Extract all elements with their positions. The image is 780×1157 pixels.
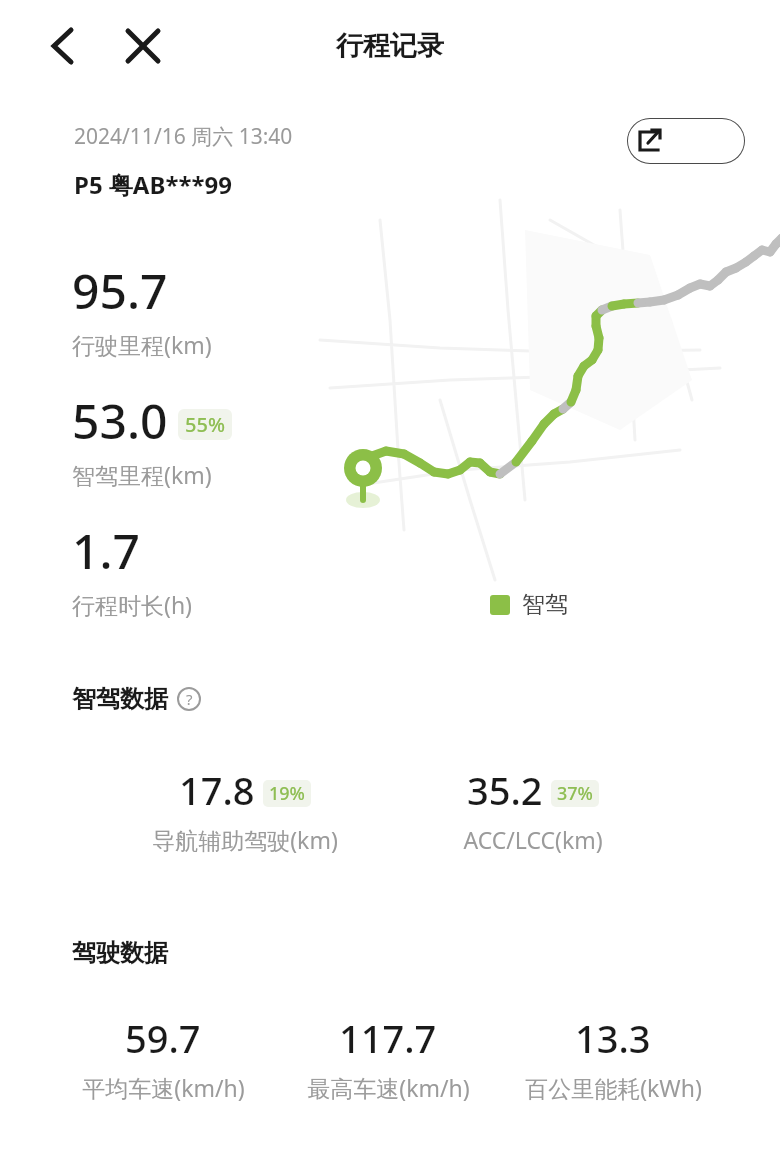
button[interactable]: 117.7 xyxy=(238,1012,538,1103)
staticText: 行程记录 xyxy=(0,29,780,63)
button[interactable]: Close xyxy=(115,18,171,74)
staticText: 最高车速(km/h) xyxy=(307,1072,470,1103)
staticText: 59.7 xyxy=(125,1012,201,1064)
staticText: 百公里能耗(kWh) xyxy=(525,1072,702,1103)
staticText: 智驾 xyxy=(522,590,568,619)
staticText: ? xyxy=(186,689,193,709)
staticText: 驾驶数据 xyxy=(72,938,168,968)
staticText: 37% xyxy=(557,781,593,806)
staticText: 117.7 xyxy=(339,1012,437,1064)
button[interactable]: Back xyxy=(34,18,90,74)
staticText: 53.0 xyxy=(72,388,168,453)
staticText: 55% xyxy=(185,411,225,438)
staticText: 13.3 xyxy=(575,1012,651,1064)
staticText: 行驶里程(km) xyxy=(72,329,212,360)
button[interactable]: 95.7 xyxy=(72,258,212,360)
staticText: P5 粤AB***99 xyxy=(74,168,232,201)
staticText: 行程时长(h) xyxy=(72,589,193,620)
staticText: 2024/11/16 周六 13:40 xyxy=(74,122,293,151)
button[interactable]: 59.7 xyxy=(13,1012,313,1103)
staticText: 导航辅助驾驶(km) xyxy=(152,824,338,855)
button[interactable]: 13.3 xyxy=(463,1012,763,1103)
staticText: 平均车速(km/h) xyxy=(82,1072,245,1103)
staticText: 智驾数据 xyxy=(72,684,168,714)
button[interactable]: 17.8 xyxy=(95,764,395,855)
button[interactable]: 1.7 xyxy=(72,518,193,620)
staticText: ACC/LCC(km) xyxy=(463,824,603,855)
staticText: 95.7 xyxy=(72,258,168,323)
button[interactable]: 53.0 xyxy=(72,388,232,490)
staticText: 35.2 xyxy=(467,764,543,816)
button[interactable]: 分享 xyxy=(627,118,745,164)
button[interactable]: 35.2 xyxy=(383,764,683,855)
staticText: 19% xyxy=(269,781,305,806)
staticText: 1.7 xyxy=(72,518,140,583)
staticText: 17.8 xyxy=(179,764,255,816)
staticText: 智驾里程(km) xyxy=(72,459,212,490)
button[interactable]: Help about 智驾数据 xyxy=(176,686,202,712)
